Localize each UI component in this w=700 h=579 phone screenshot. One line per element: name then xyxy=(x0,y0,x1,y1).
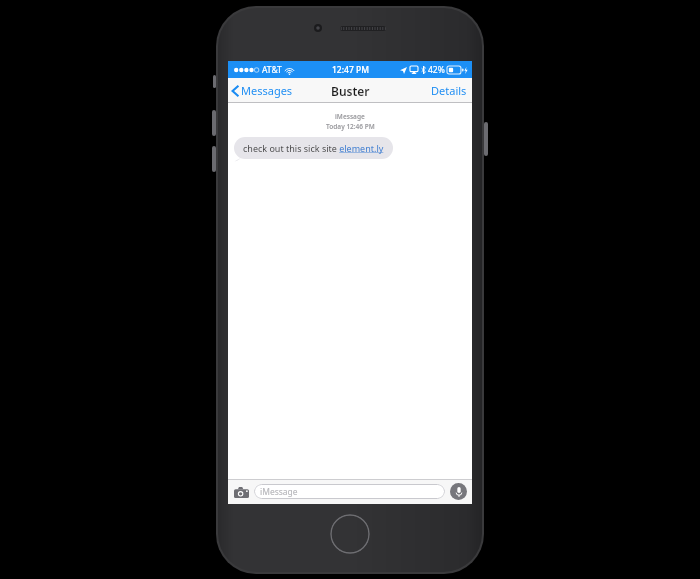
button[interactable]: check out this sick site element.ly xyxy=(234,137,393,159)
staticText: Today 12:46 PM xyxy=(326,122,375,131)
staticText: Details xyxy=(431,83,467,98)
staticText: iMessage xyxy=(335,112,365,121)
staticText: 12:47 PM xyxy=(332,64,369,76)
staticText: 42% xyxy=(428,64,445,76)
button[interactable]: Details xyxy=(426,80,472,101)
button[interactable]: Home xyxy=(330,514,370,554)
staticText: Buster xyxy=(331,83,370,99)
staticText: check out this sick site element.ly xyxy=(243,142,384,154)
staticText: AT&T xyxy=(262,64,282,76)
button[interactable]: Record audio message xyxy=(450,483,467,500)
button[interactable]: Messages xyxy=(228,80,299,101)
button[interactable]: Camera xyxy=(233,484,249,500)
staticText: iMessage xyxy=(260,486,298,498)
button[interactable]: iMessage xyxy=(254,484,445,499)
staticText: Messages xyxy=(241,83,293,98)
